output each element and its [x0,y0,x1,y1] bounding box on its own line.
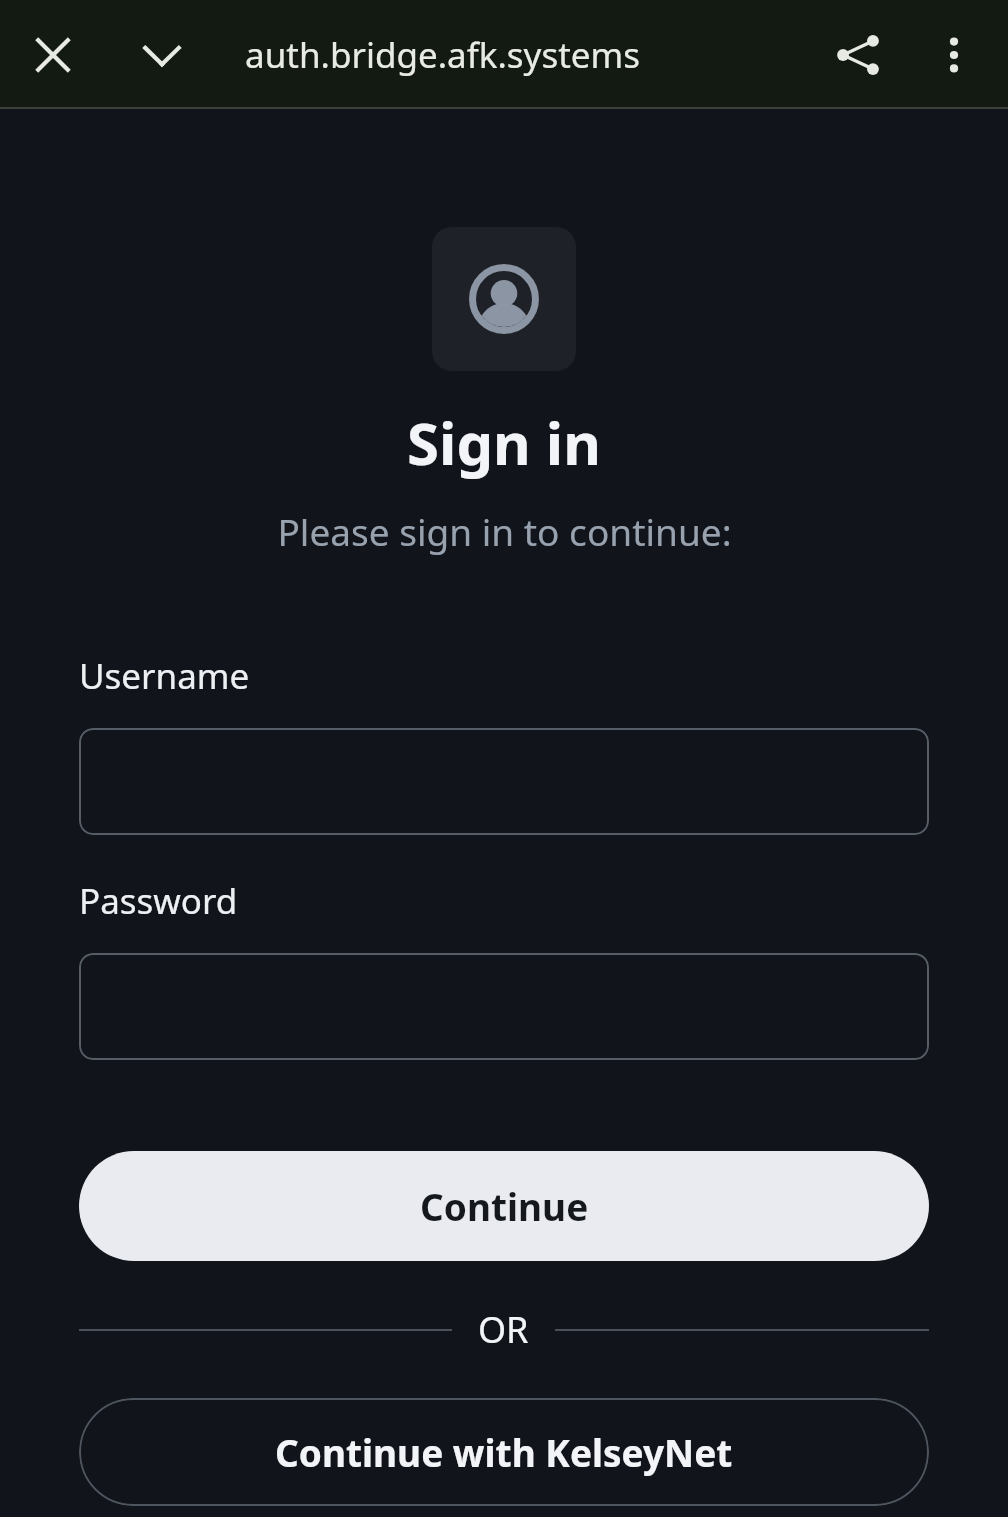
button[interactable]: Continue [79,1151,929,1261]
button[interactable]: Close [11,13,95,97]
button[interactable]: Continue with KelseyNet [79,1398,929,1506]
staticText: Continue with KelseyNet [275,1427,733,1477]
staticText: Continue [420,1181,589,1231]
button[interactable]: More options [912,13,996,97]
button[interactable] [79,953,929,1060]
staticText: Sign in [407,403,601,482]
button[interactable]: Share [816,13,900,97]
staticText: Username [79,652,250,700]
button[interactable] [79,728,929,835]
button[interactable]: Collapse [120,13,204,97]
staticText: Password [79,877,238,925]
staticText: auth.bridge.afk.systems [245,31,641,79]
staticText: Please sign in to continue: [277,506,732,556]
staticText: OR [478,1305,529,1354]
